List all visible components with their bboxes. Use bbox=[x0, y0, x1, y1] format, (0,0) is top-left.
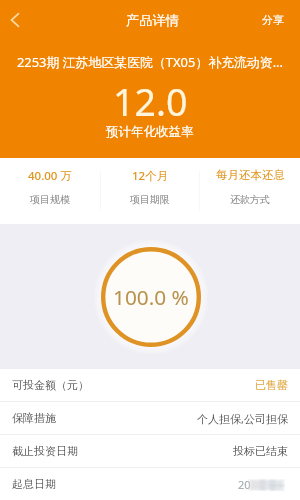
button[interactable]: 12个月 bbox=[100, 158, 200, 224]
staticText: 截止投资日期 bbox=[12, 444, 78, 458]
staticText: 保障措施 bbox=[12, 411, 56, 425]
staticText: 还款方式 bbox=[230, 193, 270, 206]
staticText: 12.0 bbox=[113, 76, 188, 127]
button[interactable]: 40.00 万 bbox=[0, 158, 100, 224]
staticText: 100.0 % bbox=[113, 283, 189, 311]
button[interactable]: 截止投资日期 bbox=[0, 435, 300, 468]
staticText: 投标已结束 bbox=[233, 444, 288, 458]
staticText: 20 bbox=[238, 477, 251, 492]
staticText: 个人担保,公司担保 bbox=[197, 411, 288, 426]
staticText: 项目期限 bbox=[130, 193, 170, 206]
button[interactable]: Back bbox=[0, 0, 40, 40]
button[interactable]: 保障措施 bbox=[0, 402, 300, 435]
staticText: 2253期 江苏地区某医院（TX05）补充流动资... bbox=[4, 53, 296, 71]
staticText: 每月还本还息 bbox=[216, 168, 285, 182]
staticText: 产品详情 bbox=[126, 12, 179, 29]
staticText: 起息日期 bbox=[12, 477, 56, 491]
staticText: 分享 bbox=[262, 13, 284, 27]
staticText: 项目规模 bbox=[30, 193, 70, 206]
staticText: 40.00 万 bbox=[28, 168, 72, 184]
staticText: 可投金额（元） bbox=[12, 378, 89, 392]
button[interactable]: 每月还本还息 bbox=[200, 158, 300, 224]
button[interactable]: 可投金额（元） bbox=[0, 369, 300, 402]
button[interactable]: 分享 bbox=[248, 3, 300, 37]
button[interactable]: 起息日期 bbox=[0, 468, 300, 500]
staticText: 预计年化收益率 bbox=[106, 124, 194, 140]
staticText: 12个月 bbox=[132, 168, 169, 184]
staticText: 已售罄 bbox=[255, 378, 288, 392]
